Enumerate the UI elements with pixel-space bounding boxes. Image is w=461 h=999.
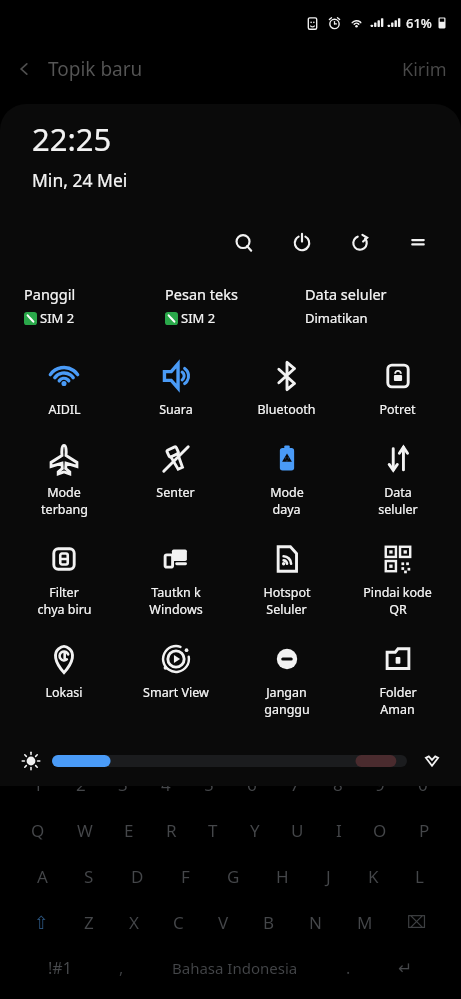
staticText: N (309, 911, 322, 934)
staticText: 2 (76, 773, 86, 796)
button[interactable]: Search (225, 224, 263, 262)
staticText: chya biru (37, 601, 92, 618)
staticText: T (208, 819, 218, 842)
staticText: J (326, 865, 331, 888)
staticText: Jangan (266, 684, 307, 701)
staticText: Bahasa Indonesia (172, 958, 298, 978)
button[interactable]: Senter (120, 442, 231, 501)
staticText: 5 (204, 773, 214, 796)
staticText: B (263, 911, 275, 934)
staticText: Mode (47, 484, 81, 501)
staticText: 3 (118, 773, 128, 796)
staticText: daya (272, 501, 301, 518)
button[interactable]: AIDIL (8, 359, 120, 418)
button[interactable]: Mode daya (231, 442, 342, 518)
staticText: A (37, 865, 48, 888)
staticText: Smart View (143, 684, 209, 701)
staticText: seluler (378, 501, 418, 518)
staticText: , (119, 957, 124, 979)
staticText: Panggil (24, 284, 76, 304)
staticText: AIDIL (48, 401, 81, 418)
button[interactable]: Bluetooth (231, 359, 342, 418)
staticText: . (346, 957, 351, 979)
staticText: Bluetooth (257, 401, 316, 418)
staticText: 4 (161, 773, 171, 796)
button[interactable]: Jangan ganggu (231, 642, 342, 718)
staticText: Min, 24 Mei (32, 168, 128, 192)
staticText: Seluler (266, 601, 307, 618)
button[interactable]: Brightness settings (419, 748, 445, 774)
staticText: Hotspot (263, 584, 311, 601)
staticText: D (131, 865, 144, 888)
button[interactable]: Power (283, 224, 321, 262)
staticText: !#1 (48, 957, 72, 979)
staticText: SIM 2 (181, 309, 216, 327)
staticText: E (124, 819, 134, 842)
staticText: P (419, 819, 430, 842)
staticText: Folder (379, 684, 417, 701)
staticText: K (368, 865, 379, 888)
staticText: C (173, 911, 184, 934)
staticText: M (357, 911, 373, 934)
button[interactable]: Smart View (120, 642, 231, 701)
staticText: Y (250, 819, 260, 842)
button[interactable]: Panggil (24, 284, 165, 327)
staticText: ““ (393, 699, 404, 719)
button[interactable]: Pesan teks (165, 284, 305, 327)
staticText: ↵ (398, 958, 413, 978)
staticText: 1 (33, 773, 43, 796)
staticText: Topik baru (48, 56, 143, 82)
button[interactable]: Filter chya biru (8, 542, 120, 618)
button[interactable]: Pindai kode QR (342, 542, 453, 618)
staticText: Pesan teks (165, 284, 238, 304)
staticText: I (336, 819, 342, 842)
staticText: Lokasi (45, 684, 83, 701)
staticText: ⇧ (34, 912, 50, 933)
staticText: 8 (333, 773, 343, 796)
staticText: Dimatikan (305, 309, 368, 327)
button[interactable]: Data seluler (305, 284, 445, 327)
button[interactable] (52, 755, 407, 767)
staticText: G (227, 865, 240, 888)
staticText: Mode (270, 484, 304, 501)
staticText: SIM 2 (40, 309, 75, 327)
staticText: ganggu (264, 701, 310, 718)
button[interactable]: Auto rotate (341, 224, 379, 262)
button[interactable]: Data seluler (342, 442, 453, 518)
staticText: X (129, 911, 139, 934)
staticText: Potret (379, 401, 416, 418)
staticText: QR (389, 601, 407, 618)
staticText: R (166, 819, 177, 842)
staticText: 9 (375, 773, 385, 796)
button[interactable]: Hotspot Seluler (231, 542, 342, 618)
button[interactable]: Suara (120, 359, 231, 418)
staticText: Senter (156, 484, 195, 501)
button[interactable]: Tautkn k Windows (120, 542, 231, 618)
button[interactable]: Lokasi (8, 642, 120, 701)
staticText: 61% (406, 14, 432, 32)
staticText: Data (384, 484, 412, 501)
button[interactable]: Mode terbang (8, 442, 120, 518)
staticText: 6 (247, 773, 257, 796)
button[interactable]: Settings menu (399, 224, 437, 262)
staticText: O (373, 819, 387, 842)
staticText: L (415, 865, 424, 888)
staticText: Pindai kode (363, 584, 432, 601)
button[interactable]: Folder Aman (342, 642, 453, 718)
staticText: 22:25 (32, 118, 112, 160)
staticText: 7 (290, 773, 300, 796)
button[interactable]: Potret (342, 359, 453, 418)
staticText: Q (31, 819, 45, 842)
staticText: Kirim (402, 57, 447, 82)
staticText: Data seluler (305, 284, 387, 304)
